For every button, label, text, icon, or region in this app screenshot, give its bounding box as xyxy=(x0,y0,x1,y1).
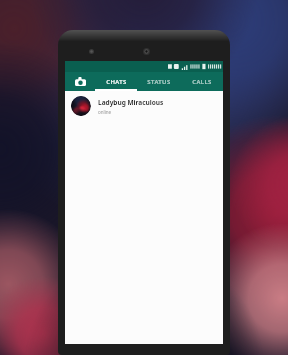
staticText: online xyxy=(98,109,112,115)
staticText: CALLS xyxy=(192,78,212,86)
button[interactable]: Camera xyxy=(65,72,95,91)
button[interactable]: Ladybug Miraculous xyxy=(65,91,223,121)
staticText: CHATS xyxy=(106,78,127,86)
staticText: Ladybug Miraculous xyxy=(98,98,164,107)
button[interactable]: CALLS xyxy=(180,72,223,91)
button[interactable]: STATUS xyxy=(137,72,180,91)
staticText: STATUS xyxy=(147,78,171,86)
button[interactable]: CHATS xyxy=(95,72,137,91)
